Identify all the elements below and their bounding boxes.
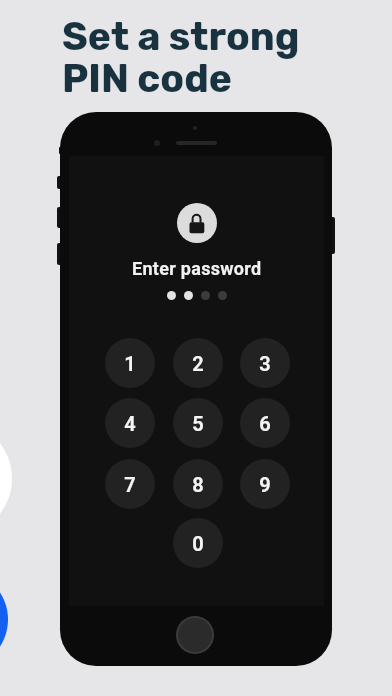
button[interactable]: 6 bbox=[240, 398, 290, 448]
button[interactable]: 2 bbox=[173, 338, 223, 388]
staticText: Enter password bbox=[132, 258, 262, 279]
staticText: Set a strong PIN code bbox=[62, 14, 300, 101]
button[interactable]: 0 bbox=[173, 518, 223, 568]
staticText: 8 bbox=[192, 473, 204, 496]
staticText: 9 bbox=[259, 473, 271, 496]
staticText: 6 bbox=[259, 412, 271, 435]
staticText: 3 bbox=[259, 352, 271, 375]
button[interactable]: Home bbox=[176, 616, 214, 654]
button[interactable]: 1 bbox=[105, 338, 155, 388]
staticText: 0 bbox=[192, 532, 204, 555]
staticText: 2 bbox=[192, 352, 204, 375]
staticText: 5 bbox=[192, 412, 204, 435]
staticText: 7 bbox=[124, 473, 136, 496]
button[interactable]: 8 bbox=[173, 459, 223, 509]
button[interactable]: 4 bbox=[105, 398, 155, 448]
button[interactable]: 9 bbox=[240, 459, 290, 509]
button[interactable]: 5 bbox=[173, 398, 223, 448]
staticText: 4 bbox=[124, 412, 136, 435]
button[interactable]: 7 bbox=[105, 459, 155, 509]
button[interactable]: 3 bbox=[240, 338, 290, 388]
staticText: 1 bbox=[124, 352, 136, 375]
